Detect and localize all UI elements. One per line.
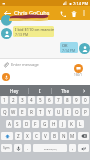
staticText: 4 <box>30 97 33 103</box>
staticText: 7:14 PM <box>73 1 89 6</box>
staticText: 7 <box>57 97 60 103</box>
staticText: I <box>39 88 41 94</box>
button[interactable]: The <box>52 85 77 96</box>
staticText: X <box>26 133 29 139</box>
button[interactable]: H <box>50 120 57 128</box>
button[interactable]: F <box>32 120 39 128</box>
staticText: Z <box>17 133 20 139</box>
staticText: B <box>53 133 56 139</box>
button[interactable]: C <box>33 132 40 140</box>
button[interactable]: Sym <box>1 144 12 152</box>
button[interactable]: 5 <box>37 96 44 104</box>
button[interactable]: Y <box>46 108 53 116</box>
staticText: W <box>11 109 16 115</box>
button[interactable]: 9 <box>73 96 80 104</box>
staticText: H <box>52 121 56 127</box>
button[interactable]: Voice typing <box>14 144 22 152</box>
staticText: 6 <box>48 97 51 103</box>
button[interactable]: I <box>29 85 51 96</box>
staticText: 7:13 PM <box>15 32 29 37</box>
button[interactable]: English(US) <box>33 144 67 152</box>
button[interactable]: D <box>23 120 30 128</box>
staticText: . <box>27 145 29 151</box>
button[interactable]: , <box>69 144 76 152</box>
staticText: Hey <box>10 88 19 94</box>
button[interactable]: E <box>19 108 26 116</box>
button[interactable]: Delete <box>68 8 79 19</box>
button[interactable]: More options <box>79 8 89 18</box>
button[interactable]: N <box>60 132 67 140</box>
staticText: Q <box>3 109 7 115</box>
button[interactable]: Z <box>15 132 22 140</box>
staticText: 9 <box>75 97 78 103</box>
button[interactable]: I <box>64 108 71 116</box>
staticText: J <box>62 121 64 127</box>
button[interactable]: Back <box>0 6 14 20</box>
staticText: I bid $110 on mancini <box>15 27 54 32</box>
button[interactable]: M <box>69 132 76 140</box>
button[interactable]: W <box>10 108 17 116</box>
staticText: 7:14 PM <box>62 48 76 53</box>
staticText: 8 <box>66 97 69 103</box>
button[interactable]: More suggestions <box>77 85 90 96</box>
button[interactable]: 3 <box>19 96 26 104</box>
button[interactable]: Shift <box>1 132 13 140</box>
button[interactable]: K <box>68 120 75 128</box>
button[interactable]: Send message <box>74 64 83 73</box>
staticText: 2 <box>12 97 15 103</box>
staticText: K <box>70 121 73 127</box>
staticText: M <box>70 133 75 139</box>
staticText: V <box>44 133 47 139</box>
button[interactable]: U <box>55 108 62 116</box>
staticText: , <box>72 145 74 151</box>
button[interactable]: OK <box>60 42 78 53</box>
staticText: Enter message <box>11 62 39 67</box>
button[interactable]: R <box>28 108 35 116</box>
button[interactable]: G <box>41 120 48 128</box>
button[interactable]: O <box>73 108 80 116</box>
button[interactable]: 4 <box>28 96 35 104</box>
button[interactable]: 6 <box>46 96 53 104</box>
staticText: S <box>16 121 19 127</box>
button[interactable]: 8 <box>64 96 71 104</box>
button[interactable]: L <box>77 120 84 128</box>
button[interactable]: Call <box>57 8 68 19</box>
staticText: 5 <box>39 97 42 103</box>
button[interactable]: T <box>37 108 44 116</box>
button[interactable]: 1 <box>1 96 8 104</box>
button[interactable]: V <box>42 132 49 140</box>
staticText: 0 <box>84 97 87 103</box>
button[interactable]: S <box>14 120 21 128</box>
staticText: Sym <box>3 146 10 150</box>
button[interactable]: A <box>6 120 12 128</box>
staticText: Y <box>48 109 51 115</box>
staticText: O <box>75 109 79 115</box>
button[interactable]: 0 <box>82 96 89 104</box>
staticText: T <box>39 109 42 115</box>
staticText: C <box>35 133 38 139</box>
staticText: Chris GoCubs <box>14 9 50 17</box>
button[interactable]: Attach file <box>1 60 10 69</box>
staticText: The <box>61 88 69 94</box>
staticText: OK <box>62 43 68 48</box>
button[interactable]: Voice input <box>2 73 10 81</box>
staticText: E <box>21 109 24 115</box>
staticText: U <box>57 109 61 115</box>
staticText: L <box>79 121 82 127</box>
staticText: D <box>25 121 29 127</box>
button[interactable]: X <box>24 132 31 140</box>
button[interactable]: I bid $110 on mancini <box>13 26 54 37</box>
staticText: 3 <box>21 97 24 103</box>
button[interactable]: P <box>82 108 89 116</box>
button[interactable]: Hey <box>0 85 28 96</box>
button[interactable]: Backspace <box>78 132 89 140</box>
button[interactable]: Enter <box>78 144 89 152</box>
staticText: G <box>43 121 47 127</box>
staticText: N <box>62 133 66 139</box>
button[interactable]: J <box>59 120 66 128</box>
button[interactable]: 7 <box>55 96 62 104</box>
button[interactable]: . <box>24 144 31 152</box>
button[interactable]: 2 <box>10 96 17 104</box>
button[interactable]: Q <box>1 108 8 116</box>
button[interactable]: B <box>51 132 58 140</box>
